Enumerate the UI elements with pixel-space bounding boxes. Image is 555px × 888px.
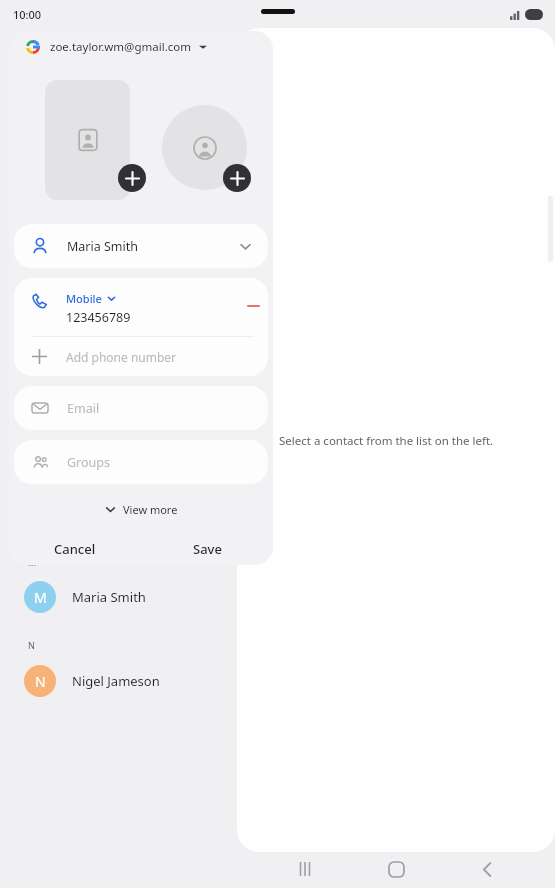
staticText: N <box>35 672 46 691</box>
staticText: M <box>34 588 47 607</box>
staticText: Cancel <box>54 540 96 558</box>
staticText: Add phone number <box>66 349 177 365</box>
button[interactable]: zoe.taylor.wm@gmail.com <box>9 31 273 63</box>
staticText: N <box>28 639 35 651</box>
button[interactable]: M <box>0 570 237 624</box>
button[interactable]: Cancel <box>9 533 141 565</box>
staticText: Groups <box>67 454 110 471</box>
button[interactable]: Save <box>141 533 273 565</box>
button[interactable]: Home <box>373 850 419 888</box>
staticText: Nigel Jameson <box>72 672 160 690</box>
button[interactable]: View more <box>95 498 188 521</box>
button[interactable]: Recent apps <box>282 850 328 888</box>
staticText: 123456789 <box>66 309 131 326</box>
staticText: Maria Smith <box>67 238 139 255</box>
button[interactable]: Add photo <box>45 80 130 200</box>
staticText: Select a contact from the list on the le… <box>279 433 494 449</box>
button[interactable]: Remove phone number <box>242 299 264 313</box>
staticText: zoe.taylor.wm@gmail.com <box>50 39 191 55</box>
staticText: Save <box>193 540 222 558</box>
staticText: 10:00 <box>13 7 42 22</box>
staticText: Mobile <box>66 291 102 306</box>
staticText: Maria Smith <box>72 588 146 606</box>
button[interactable]: Mobile <box>66 291 116 306</box>
staticText: M <box>28 556 37 568</box>
button[interactable]: Add avatar photo <box>223 164 251 192</box>
button[interactable]: Maria Smith <box>14 224 268 268</box>
button[interactable]: Email <box>14 386 268 430</box>
button[interactable]: Add phone number <box>14 337 268 376</box>
staticText: Email <box>67 400 100 417</box>
button[interactable]: Add contact photo <box>118 164 146 192</box>
button[interactable]: Add avatar <box>162 105 247 190</box>
button[interactable]: N <box>0 654 237 708</box>
button[interactable]: Groups <box>14 440 268 484</box>
button[interactable]: Back <box>464 850 510 888</box>
staticText: View more <box>123 502 178 517</box>
